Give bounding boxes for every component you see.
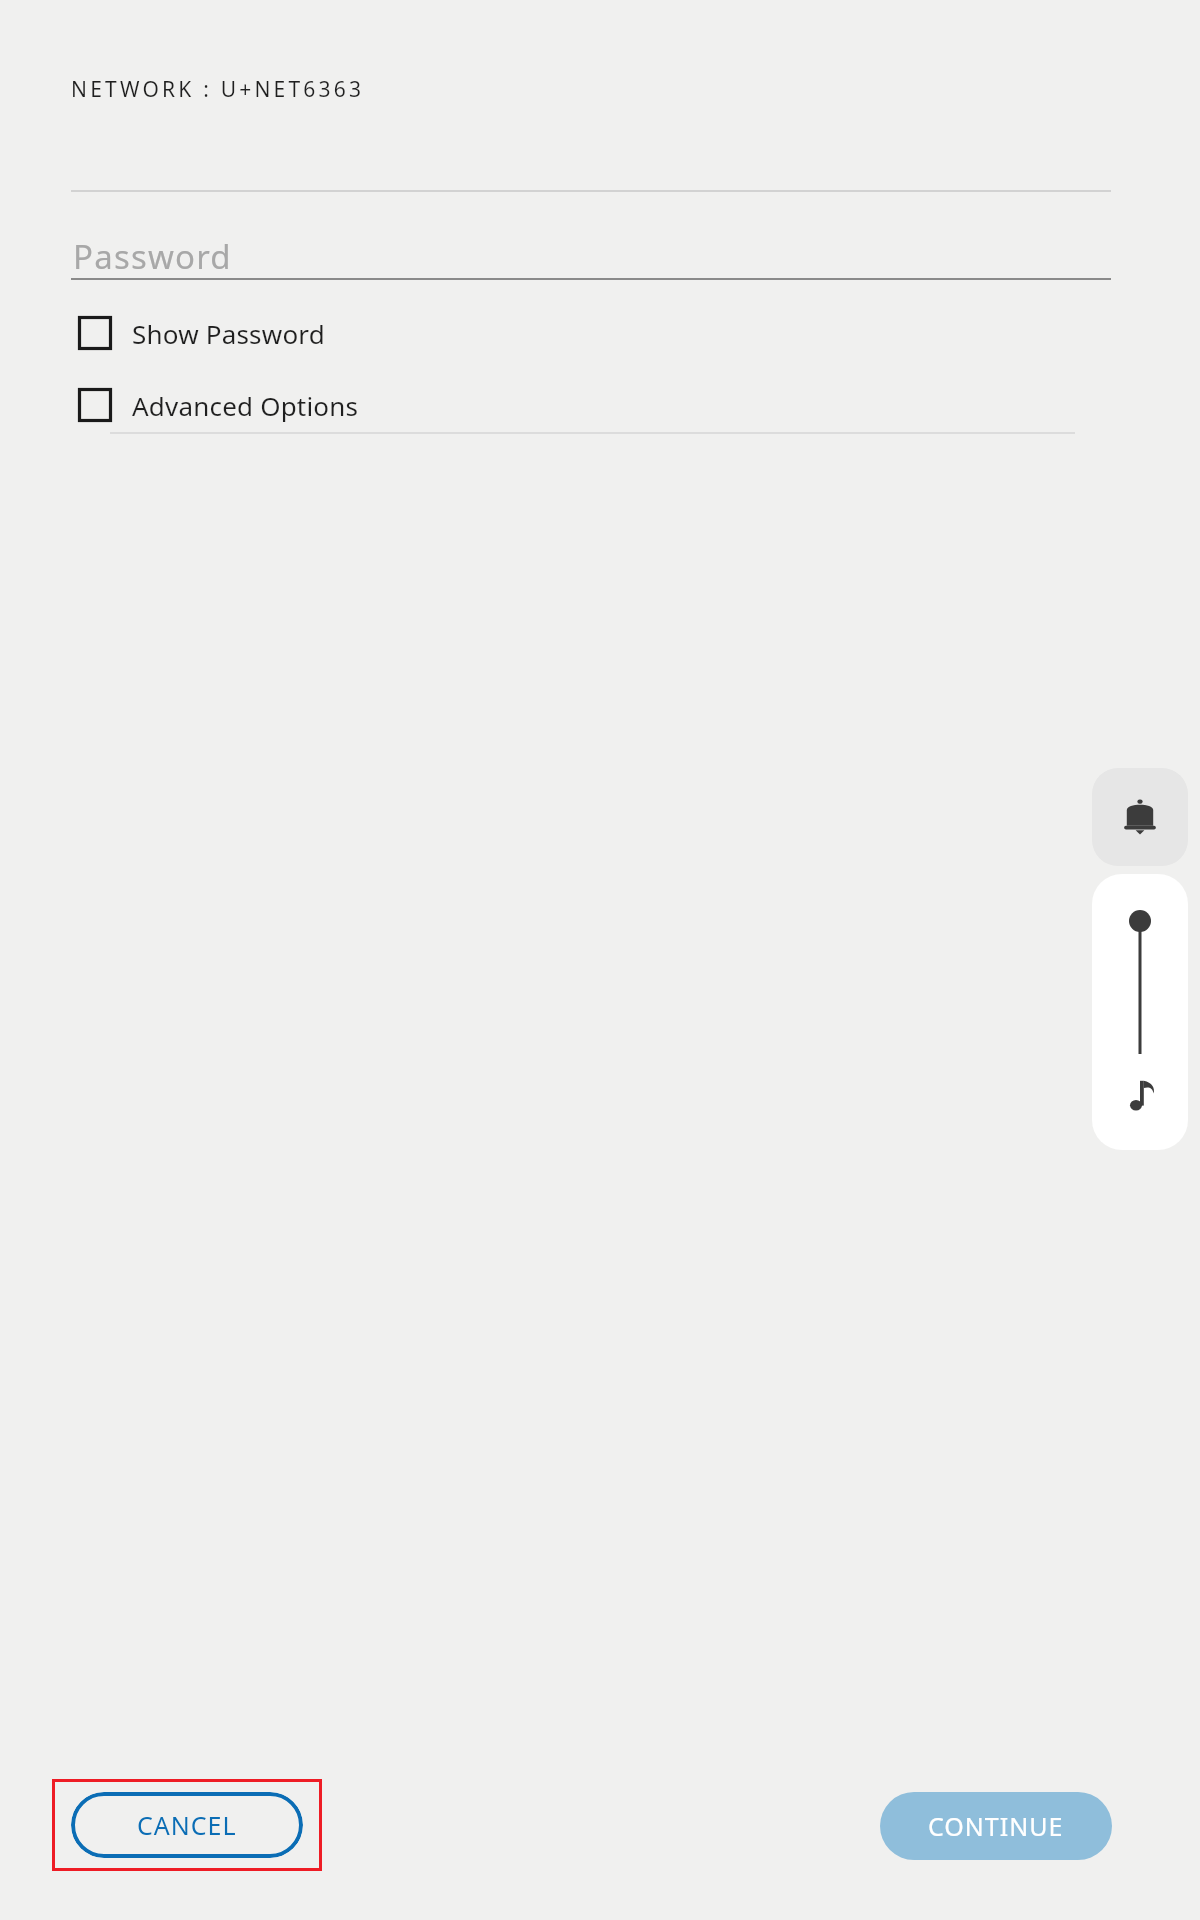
staticText: Advanced Options xyxy=(132,388,359,423)
staticText: CANCEL xyxy=(137,1808,237,1842)
staticText: Show Password xyxy=(132,316,325,351)
button[interactable]: Show Password xyxy=(60,305,580,361)
button[interactable]: Media xyxy=(1114,1070,1166,1122)
button[interactable]: Ringer mode xyxy=(1092,768,1188,866)
staticText: CONTINUE xyxy=(928,1809,1064,1843)
button[interactable]: CANCEL xyxy=(71,1792,303,1858)
staticText: NETWORK : U+NET6363 xyxy=(71,75,365,104)
button[interactable]: Advanced Options xyxy=(60,377,580,433)
staticText: Password xyxy=(73,234,232,279)
button[interactable]: Media volume xyxy=(1120,908,1160,1058)
button[interactable]: CONTINUE xyxy=(880,1792,1112,1860)
